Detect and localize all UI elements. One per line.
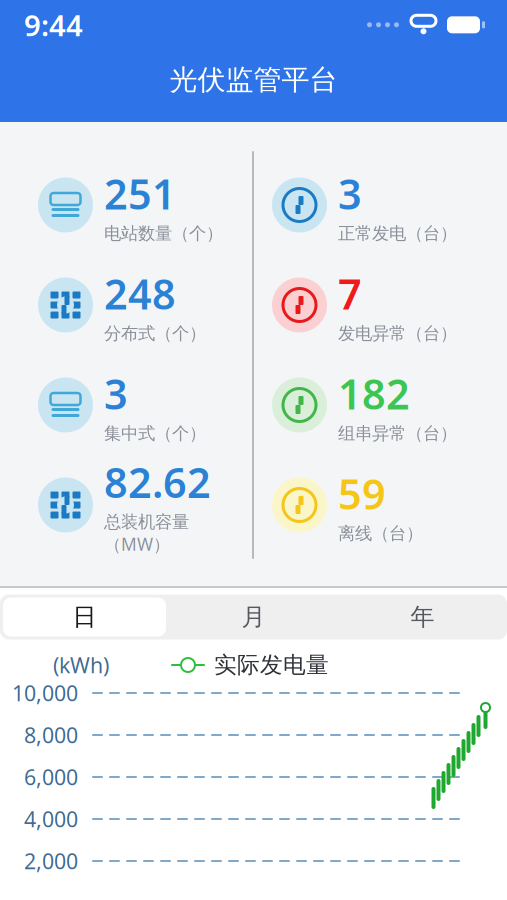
button[interactable]: 3 — [252, 155, 507, 255]
staticText: 日 — [72, 602, 96, 632]
staticText: 7 — [338, 266, 362, 321]
staticText: 总装机容量（MW） — [104, 511, 189, 556]
staticText: 电站数量（个） — [104, 223, 223, 244]
staticText: 4,000 — [24, 805, 78, 833]
staticText: 2,000 — [24, 847, 78, 875]
staticText: 248 — [104, 266, 176, 321]
staticText: 6,000 — [24, 763, 78, 791]
button[interactable]: 82.62 — [0, 455, 252, 555]
staticText: (kWh) — [53, 651, 109, 679]
staticText: 离线（台） — [338, 523, 423, 544]
staticText: 集中式（个） — [104, 423, 206, 444]
staticText: 10,000 — [12, 679, 78, 707]
staticText: 发电异常（台） — [338, 323, 457, 344]
staticText: 月 — [241, 602, 265, 632]
staticText: 59 — [338, 466, 386, 521]
staticText: 82.62 — [104, 454, 211, 509]
staticText: 251 — [104, 166, 176, 221]
staticText: 3 — [338, 166, 362, 221]
staticText: 182 — [338, 366, 410, 421]
button[interactable]: 3 — [0, 355, 252, 455]
staticText: 组串异常（台） — [338, 423, 457, 444]
button[interactable]: 7 — [252, 255, 507, 355]
button[interactable]: 248 — [0, 255, 252, 355]
button[interactable]: 月 — [169, 594, 338, 639]
staticText: 实际发电量 — [214, 651, 329, 679]
button[interactable]: 59 — [252, 455, 507, 555]
button[interactable]: 182 — [252, 355, 507, 455]
staticText: 3 — [104, 366, 128, 421]
staticText: 年 — [410, 602, 434, 632]
staticText: 光伏监管平台 — [169, 63, 337, 97]
staticText: 9:44 — [24, 5, 83, 44]
button[interactable]: 年 — [338, 594, 507, 639]
button[interactable]: 日 — [0, 594, 169, 639]
staticText: 8,000 — [24, 721, 78, 749]
button[interactable]: 251 — [0, 155, 252, 255]
staticText: 正常发电（台） — [338, 223, 457, 244]
staticText: 分布式（个） — [104, 323, 206, 344]
